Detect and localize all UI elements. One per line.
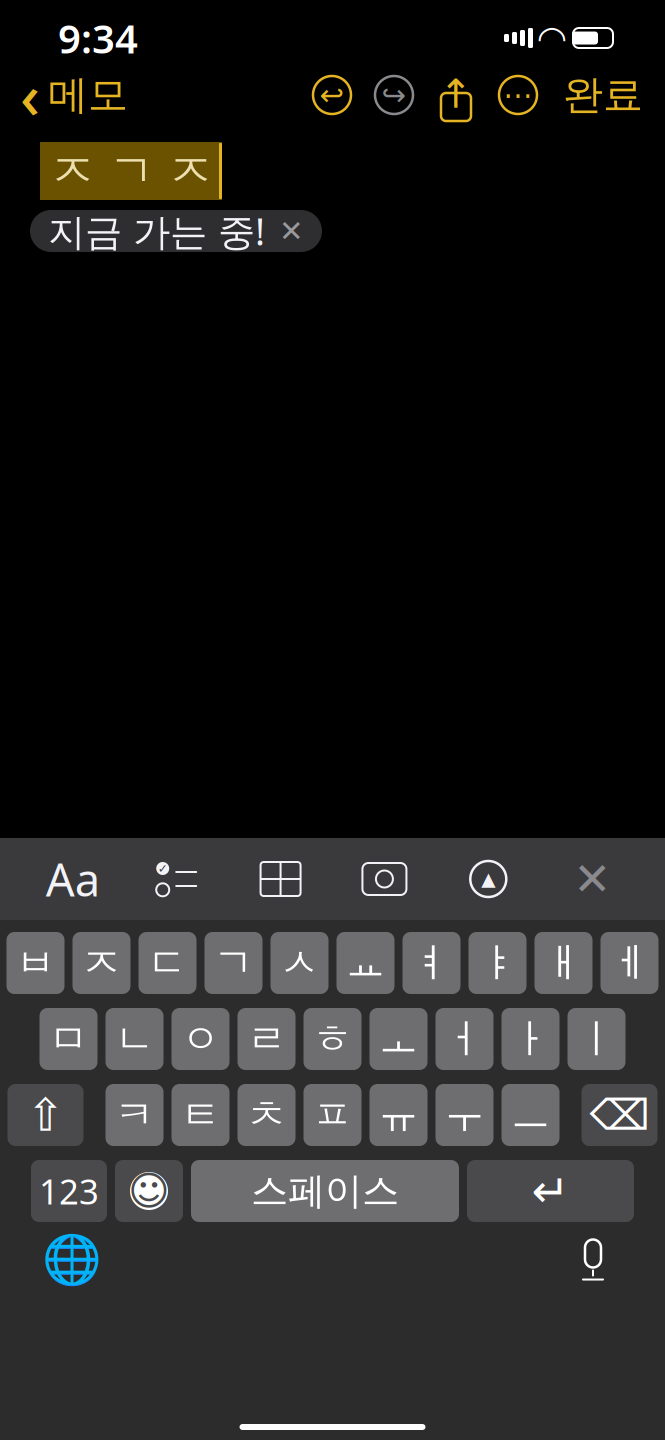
staticText: ✕ [279, 214, 304, 248]
button[interactable]: 123 [31, 1160, 107, 1222]
staticText: ◠ [538, 18, 565, 58]
button[interactable]: ‹ [6, 67, 142, 123]
button[interactable]: ㅋ [105, 1084, 163, 1146]
staticText: ㄹ [246, 1014, 286, 1063]
button[interactable]: Camera [353, 851, 415, 907]
button[interactable]: ㅐ [534, 932, 592, 994]
staticText: ↵ [531, 1165, 569, 1217]
button[interactable]: ㅍ [303, 1084, 361, 1146]
staticText: ㅑ [477, 938, 517, 987]
button[interactable]: Emoji [115, 1160, 183, 1222]
staticText: ㄷ [147, 938, 187, 987]
staticText: 🌐 [42, 1233, 102, 1287]
button[interactable]: ㄴ [105, 1008, 163, 1070]
staticText: ㅈ [81, 938, 121, 987]
staticText: ㅁ [48, 1014, 88, 1063]
button[interactable]: ㅓ [435, 1008, 493, 1070]
button[interactable]: ㄱ [204, 932, 262, 994]
button[interactable]: ㅇ [171, 1008, 229, 1070]
button[interactable]: ㅂ [6, 932, 64, 994]
button[interactable]: ㄷ [138, 932, 196, 994]
staticText: ▲ [481, 868, 495, 890]
staticText: Aa [46, 849, 100, 909]
button[interactable]: More [487, 67, 549, 123]
button[interactable]: ㅎ [303, 1008, 361, 1070]
button[interactable]: ㅏ [501, 1008, 559, 1070]
button[interactable]: ㅔ [600, 932, 658, 994]
staticText: ㅈ ㄱ ㅈ [50, 143, 213, 199]
button[interactable]: 지금 가는 중! [30, 210, 322, 252]
button[interactable]: ㅜ [435, 1084, 493, 1146]
button[interactable]: Checklist [146, 851, 208, 907]
staticText: ㅗ [378, 1014, 418, 1063]
button[interactable]: ㅁ [39, 1008, 97, 1070]
button[interactable]: ㅑ [468, 932, 526, 994]
staticText: ㅏ [510, 1014, 550, 1063]
staticText: ⌫ [589, 1091, 649, 1139]
button[interactable]: 완료 [549, 67, 657, 123]
staticText: ㅎ [312, 1014, 352, 1063]
button[interactable]: Shift [7, 1084, 83, 1146]
staticText: ↑ [439, 71, 473, 117]
staticText: ㅔ [609, 938, 649, 987]
button[interactable]: ㅠ [369, 1084, 427, 1146]
button[interactable]: ㅣ [567, 1008, 625, 1070]
button[interactable]: Dictation [563, 1232, 623, 1288]
staticText: ⋯ [503, 78, 532, 112]
button[interactable]: Share [425, 67, 487, 123]
button[interactable]: ㅌ [171, 1084, 229, 1146]
staticText: ㅅ [279, 938, 319, 987]
staticText: ㅂ [15, 938, 55, 987]
staticText: ✓ [158, 862, 168, 875]
button[interactable]: ㅡ [501, 1084, 559, 1146]
button[interactable]: Undo [301, 67, 363, 123]
button[interactable]: Table [250, 851, 312, 907]
staticText: ㅡ [510, 1090, 550, 1139]
staticText: ㅊ [246, 1090, 286, 1139]
staticText: ☺ [128, 1168, 170, 1214]
button[interactable]: ㅅ [270, 932, 328, 994]
staticText: ↩ [319, 78, 344, 112]
button[interactable]: ㅕ [402, 932, 460, 994]
button[interactable]: ㅗ [369, 1008, 427, 1070]
staticText: ⇧ [26, 1089, 64, 1141]
button[interactable]: ㅛ [336, 932, 394, 994]
staticText: ✕ [573, 853, 611, 905]
button[interactable]: Format [42, 851, 104, 907]
staticText: ㅜ [444, 1090, 484, 1139]
button[interactable]: Return [467, 1160, 634, 1222]
button[interactable]: Dismiss keyboard [561, 851, 623, 907]
staticText: ㅣ [576, 1014, 616, 1063]
staticText: 완료 [563, 70, 643, 119]
button[interactable]: Delete [581, 1084, 657, 1146]
staticText: 123 [39, 1168, 99, 1214]
staticText: ↪ [381, 78, 406, 112]
button[interactable]: Markup [457, 851, 519, 907]
staticText: ㄴ [114, 1014, 154, 1063]
staticText: ‹ [20, 54, 40, 136]
staticText: 스페이스 [251, 1168, 399, 1214]
staticText: 9:34 [58, 11, 138, 64]
staticText: ㄱ [213, 938, 253, 987]
button[interactable]: ㅊ [237, 1084, 295, 1146]
button[interactable]: ㅈ [72, 932, 130, 994]
staticText: 메모 [48, 70, 128, 119]
staticText: ㅠ [378, 1090, 418, 1139]
staticText: ㅍ [312, 1090, 352, 1139]
staticText: ㅛ [345, 938, 385, 987]
staticText: 지금 가는 중! [48, 206, 265, 256]
staticText: ㅕ [411, 938, 451, 987]
staticText: ㅐ [543, 938, 583, 987]
button[interactable]: 스페이스 [191, 1160, 459, 1222]
button[interactable]: ㄹ [237, 1008, 295, 1070]
staticText: ㅌ [180, 1090, 220, 1139]
staticText: ㅇ [180, 1014, 220, 1063]
button[interactable]: Redo [363, 67, 425, 123]
staticText: ㅋ [114, 1090, 154, 1139]
staticText: ㅓ [444, 1014, 484, 1063]
button[interactable]: Next keyboard [42, 1232, 102, 1288]
